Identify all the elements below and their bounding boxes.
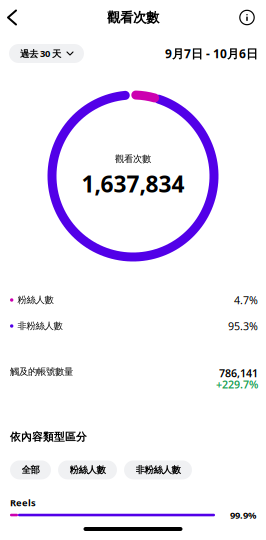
staticText: 依內容類型區分 bbox=[10, 430, 87, 443]
staticText: 9月7日 - 10月6日 bbox=[165, 45, 258, 61]
staticText: 觀看次數 bbox=[115, 153, 151, 165]
staticText: +229.7% bbox=[216, 377, 258, 391]
button[interactable]: 過去 30 天 bbox=[9, 44, 84, 63]
staticText: 過去 30 天 bbox=[20, 47, 61, 60]
staticText: 粉絲人數 bbox=[69, 464, 105, 476]
staticText: Reels bbox=[10, 496, 36, 509]
staticText: 4.7% bbox=[234, 293, 258, 307]
button[interactable]: 粉絲人數 bbox=[58, 460, 117, 479]
staticText: 非粉絲人數 bbox=[135, 464, 180, 476]
button[interactable]: 全部 bbox=[10, 460, 51, 479]
staticText: 觸及的帳號數量 bbox=[10, 366, 73, 377]
button[interactable]: Back bbox=[0, 4, 25, 30]
button[interactable]: About this metric bbox=[236, 3, 266, 31]
button[interactable]: 非粉絲人數 bbox=[124, 460, 192, 479]
staticText: 全部 bbox=[21, 464, 39, 476]
staticText: 1,637,834 bbox=[81, 169, 184, 199]
staticText: 非粉絲人數 bbox=[17, 320, 62, 332]
staticText: 95.3% bbox=[228, 319, 258, 333]
staticText: 99.9% bbox=[230, 509, 256, 521]
staticText: 粉絲人數 bbox=[17, 294, 53, 306]
staticText: 786,141 bbox=[219, 366, 258, 380]
staticText: 觀看次數 bbox=[107, 9, 159, 26]
